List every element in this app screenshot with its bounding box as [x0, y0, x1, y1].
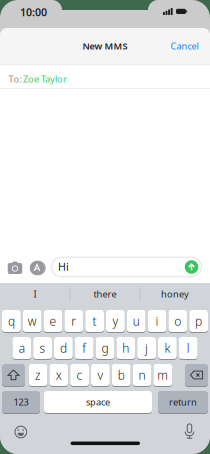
staticText: Zoe Taylor: [23, 73, 67, 85]
button[interactable]: [6, 260, 24, 276]
button[interactable]: m: [153, 363, 172, 386]
staticText: f: [82, 340, 86, 356]
button[interactable]: 123: [2, 390, 40, 413]
button[interactable]: a: [12, 336, 31, 359]
staticText: n: [138, 367, 145, 383]
staticText: Cancel: [170, 40, 198, 52]
button[interactable]: [51, 257, 201, 277]
staticText: h: [122, 340, 129, 356]
staticText: g: [101, 340, 108, 356]
button[interactable]: v: [91, 363, 110, 386]
button[interactable]: e: [44, 309, 62, 332]
button[interactable]: g: [96, 336, 114, 359]
staticText: x: [56, 367, 62, 383]
staticText: r: [71, 313, 76, 329]
staticText: return: [169, 396, 197, 408]
button[interactable]: space: [44, 390, 152, 413]
button[interactable]: [29, 260, 45, 276]
button[interactable]: q: [2, 309, 21, 332]
button[interactable]: p: [189, 309, 208, 332]
button[interactable]: there: [72, 284, 138, 304]
button[interactable]: c: [70, 363, 89, 386]
staticText: there: [93, 288, 116, 300]
button[interactable]: return: [158, 390, 208, 413]
staticText: To:: [8, 73, 22, 85]
staticText: b: [118, 367, 125, 383]
staticText: e: [49, 313, 56, 329]
staticText: 123: [13, 396, 28, 408]
staticText: u: [133, 313, 140, 329]
staticText: m: [157, 367, 168, 383]
button[interactable]: o: [168, 309, 187, 332]
staticText: 10:00: [20, 5, 47, 19]
staticText: i: [155, 313, 158, 329]
staticText: y: [112, 313, 118, 329]
button[interactable]: t: [85, 309, 104, 332]
staticText: d: [60, 340, 67, 356]
button[interactable]: u: [127, 309, 146, 332]
staticText: q: [8, 313, 15, 329]
button[interactable]: Cancel: [170, 40, 198, 52]
staticText: z: [35, 367, 41, 383]
button[interactable]: i: [148, 309, 166, 332]
button[interactable]: [184, 260, 198, 274]
staticText: s: [40, 340, 46, 356]
staticText: w: [28, 313, 37, 329]
button[interactable]: I: [2, 284, 68, 304]
button[interactable]: n: [133, 363, 151, 386]
staticText: Hi: [58, 259, 69, 274]
staticText: c: [77, 367, 83, 383]
staticText: o: [174, 313, 181, 329]
button[interactable]: [183, 423, 195, 440]
staticText: v: [97, 367, 103, 383]
staticText: p: [195, 313, 202, 329]
button[interactable]: s: [33, 336, 52, 359]
button[interactable]: y: [106, 309, 125, 332]
staticText: space: [86, 396, 110, 408]
button[interactable]: [14, 425, 28, 439]
button[interactable]: r: [64, 309, 83, 332]
button[interactable]: w: [23, 309, 42, 332]
button[interactable]: k: [158, 336, 177, 359]
staticText: j: [145, 340, 148, 356]
staticText: l: [187, 340, 190, 356]
button[interactable]: d: [54, 336, 73, 359]
button[interactable]: l: [179, 336, 198, 359]
staticText: I: [33, 288, 36, 300]
button[interactable]: honey: [142, 284, 208, 304]
staticText: t: [93, 313, 97, 329]
staticText: honey: [161, 288, 189, 300]
button[interactable]: z: [29, 363, 47, 386]
button[interactable]: [185, 363, 208, 386]
button[interactable]: x: [49, 363, 68, 386]
staticText: k: [164, 340, 170, 356]
button[interactable]: [2, 363, 25, 386]
staticText: a: [19, 340, 25, 356]
button[interactable]: j: [137, 336, 156, 359]
staticText: New MMS: [82, 40, 127, 52]
button[interactable]: h: [116, 336, 135, 359]
button[interactable]: f: [75, 336, 94, 359]
button[interactable]: b: [112, 363, 131, 386]
button[interactable]: Zoe Taylor: [23, 73, 67, 85]
